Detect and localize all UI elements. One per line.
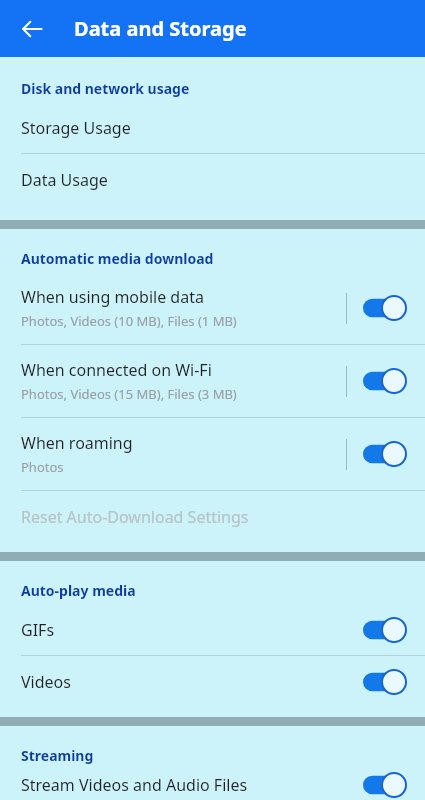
staticText: Disk and network usage [21, 79, 190, 98]
staticText: GIFs [21, 619, 55, 641]
button[interactable]: When using mobile data [0, 272, 425, 344]
staticText: Auto-play media [21, 581, 136, 600]
staticText: Streaming [21, 746, 94, 765]
button[interactable]: GIFs [0, 604, 425, 655]
staticText: Photos, Videos (10 MB), Files (1 MB) [21, 312, 237, 330]
button[interactable]: Back [12, 9, 52, 49]
staticText: When roaming [21, 432, 133, 454]
staticText: When using mobile data [21, 286, 204, 308]
staticText: When connected on Wi-Fi [21, 359, 212, 381]
button[interactable]: Storage Usage [0, 102, 425, 153]
button[interactable]: Data Usage [0, 154, 425, 205]
staticText: Photos [21, 458, 64, 476]
button[interactable]: Reset Auto-Download Settings [0, 491, 425, 542]
staticText: Data Usage [21, 169, 108, 191]
button[interactable]: When roaming [0, 418, 425, 490]
staticText: Stream Videos and Audio Files [21, 774, 248, 796]
button[interactable]: When connected on Wi-Fi [0, 345, 425, 417]
button[interactable]: Videos [0, 656, 425, 707]
staticText: Reset Auto-Download Settings [21, 506, 249, 528]
staticText: Photos, Videos (15 MB), Files (3 MB) [21, 385, 237, 403]
button[interactable]: Stream Videos and Audio Files [0, 769, 425, 800]
staticText: Storage Usage [21, 117, 131, 139]
staticText: Data and Storage [74, 15, 247, 42]
staticText: Automatic media download [21, 249, 214, 268]
staticText: Videos [21, 671, 71, 693]
